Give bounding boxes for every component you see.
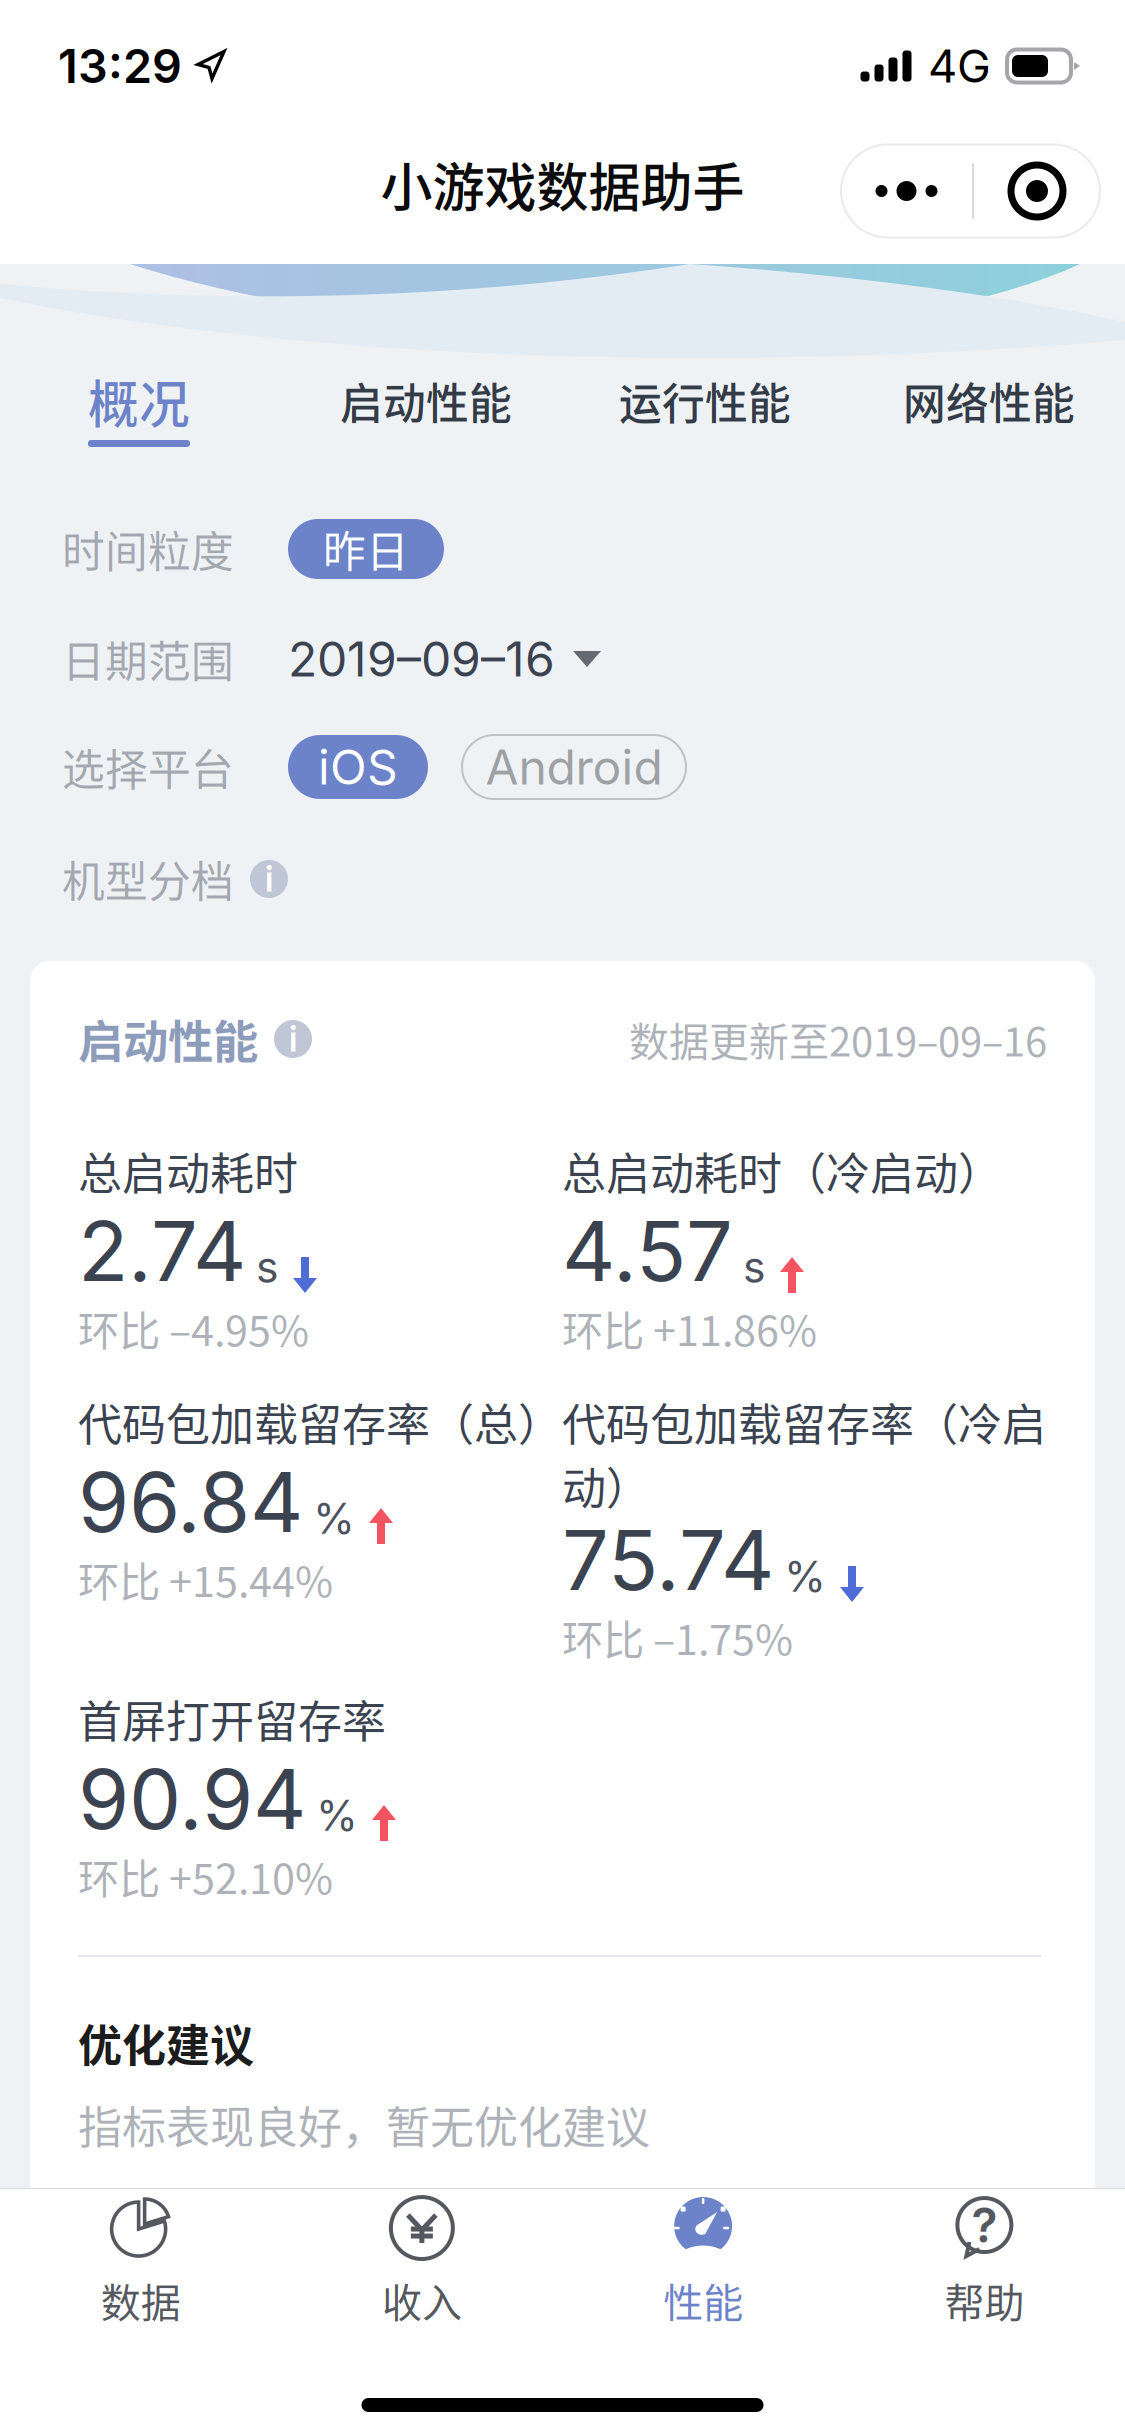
staticText: s <box>743 1241 766 1293</box>
staticText: 运行性能 <box>619 370 791 432</box>
button[interactable]: Android <box>462 735 686 799</box>
button[interactable]: 数据 <box>0 2189 281 2337</box>
staticText: 数据更新至2019–09–16 <box>629 1010 1047 1068</box>
button[interactable]: 2019–09–16 <box>288 630 601 688</box>
staticText: 性能 <box>663 2271 743 2329</box>
staticText: 环比 +15.44% <box>78 1549 333 1609</box>
staticText: 总启动耗时 <box>78 1139 298 1203</box>
staticText: s <box>256 1241 279 1293</box>
staticText: % <box>784 1550 826 1602</box>
staticText: % <box>316 1789 358 1841</box>
staticText: 机型分档 <box>62 848 234 910</box>
staticText: 启动性能 <box>78 1006 258 1072</box>
staticText: 环比 +11.86% <box>562 1298 817 1358</box>
staticText: 日期范围 <box>62 628 234 690</box>
staticText: 75.74 <box>562 1510 774 1610</box>
button[interactable]: 启动性能 <box>340 376 619 447</box>
button[interactable]: 概况 <box>88 376 340 447</box>
staticText: i <box>289 1018 297 1060</box>
button[interactable]: More <box>841 144 972 237</box>
staticText: Android <box>485 738 662 796</box>
staticText: 网络性能 <box>903 370 1075 432</box>
staticText: 代码包加载留存率（总） <box>78 1390 562 1454</box>
staticText: 96.84 <box>78 1452 303 1552</box>
button[interactable]: 昨日 <box>288 519 444 579</box>
button[interactable]: 运行性能 <box>619 376 903 447</box>
staticText: 时间粒度 <box>62 518 234 580</box>
staticText: 小游戏数据助手 <box>380 146 744 222</box>
staticText: 4G <box>928 39 991 93</box>
staticText: 帮助 <box>944 2271 1024 2329</box>
staticText: 选择平台 <box>62 736 234 798</box>
staticText: 指标表现良好，暂无优化建议 <box>78 2093 650 2156</box>
staticText: 总启动耗时（冷启动） <box>562 1139 1002 1203</box>
staticText: iOS <box>318 738 398 796</box>
staticText: 昨日 <box>323 518 409 580</box>
button[interactable]: 网络性能 <box>903 376 1103 447</box>
button[interactable]: iOS <box>288 735 428 799</box>
staticText: 13:29 <box>58 38 182 94</box>
button[interactable]: 性能 <box>562 2189 844 2337</box>
staticText: 环比 +52.10% <box>78 1846 333 1906</box>
button[interactable]: 收入 <box>281 2189 562 2337</box>
button[interactable]: ? <box>844 2189 1125 2337</box>
staticText: 首屏打开留存率 <box>78 1687 386 1751</box>
staticText: i <box>265 858 273 900</box>
staticText: 数据 <box>101 2271 181 2329</box>
staticText: % <box>313 1492 355 1544</box>
staticText: 概况 <box>88 364 190 438</box>
staticText: 4.57 <box>562 1201 733 1301</box>
staticText: 收入 <box>382 2271 462 2329</box>
staticText: 启动性能 <box>340 370 512 432</box>
staticText: 环比 –1.75% <box>562 1607 793 1667</box>
staticText: 代码包加载留存率（冷启动） <box>562 1390 1046 1517</box>
staticText: ? <box>971 2196 997 2254</box>
staticText: 2.74 <box>78 1201 246 1301</box>
staticText: 90.94 <box>78 1749 306 1849</box>
staticText: 环比 –4.95% <box>78 1298 309 1358</box>
staticText: 2019–09–16 <box>288 630 555 688</box>
staticText: 优化建议 <box>78 2011 254 2075</box>
button[interactable]: Close mini program <box>974 144 1100 237</box>
